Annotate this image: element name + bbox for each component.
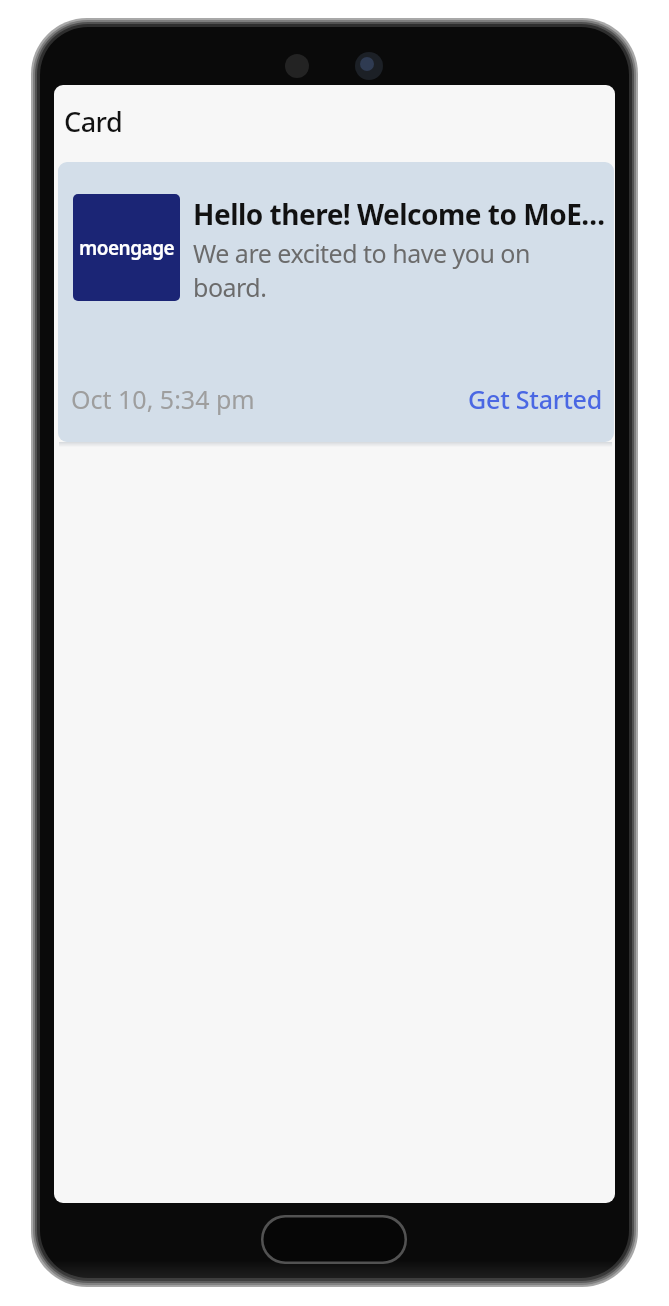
button[interactable]: moengage [58, 162, 614, 442]
staticText: Get Started [468, 382, 603, 416]
staticText: Oct 10, 5:34 pm [71, 382, 255, 416]
staticText: moengage [79, 235, 175, 261]
staticText: Card [64, 103, 123, 140]
staticText: Hello there! Welcome to MoEngage! [193, 195, 609, 233]
button[interactable]: Get Started [468, 382, 603, 416]
staticText: We are excited to have you on board. [193, 236, 530, 304]
